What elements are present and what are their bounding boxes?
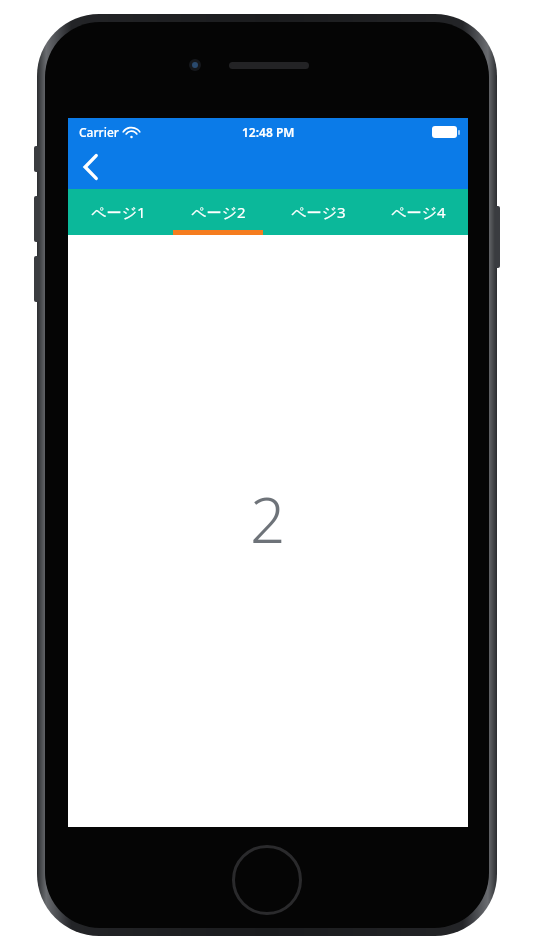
staticText: ページ3: [291, 202, 346, 222]
staticText: 12:48 PM: [242, 124, 295, 140]
button[interactable]: ページ4: [368, 189, 468, 235]
staticText: Carrier: [79, 124, 119, 140]
button[interactable]: ページ1: [68, 189, 168, 235]
button[interactable]: Back: [68, 145, 112, 189]
staticText: ページ4: [391, 202, 446, 222]
staticText: ページ2: [191, 202, 246, 222]
button[interactable]: ページ3: [268, 189, 368, 235]
staticText: 2: [250, 477, 286, 561]
button[interactable]: ページ2: [168, 189, 268, 235]
staticText: ページ1: [91, 202, 146, 222]
